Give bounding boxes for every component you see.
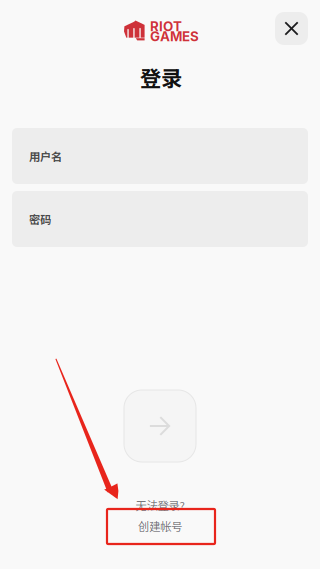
button[interactable]: 密码: [12, 191, 308, 247]
staticText: 密码: [29, 211, 51, 227]
staticText: 登录: [140, 62, 182, 92]
staticText: 创建帐号: [138, 518, 182, 534]
staticText: 无法登录?: [135, 497, 184, 513]
button[interactable]: Close: [275, 12, 308, 45]
staticText: RIOT: [150, 18, 182, 34]
button[interactable]: 无法登录?: [0, 495, 320, 515]
staticText: GAMES: [150, 28, 199, 44]
button[interactable]: Sign in: [124, 390, 196, 462]
button[interactable]: 用户名: [12, 128, 308, 184]
button[interactable]: 创建帐号: [0, 516, 320, 536]
staticText: 用户名: [29, 148, 62, 164]
